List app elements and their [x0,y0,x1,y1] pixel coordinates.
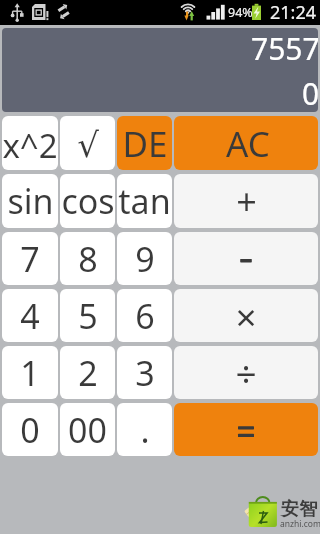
button[interactable]: 4 [2,289,58,342]
staticText: x^2 [2,123,58,168]
button[interactable]: 00 [60,403,115,456]
button[interactable]: Subtract [174,232,318,285]
button[interactable]: DE [117,116,172,170]
button[interactable]: Divide [174,346,318,399]
button[interactable]: 0 [2,403,58,456]
staticText: 安智 [281,498,317,521]
staticText: 0 [20,407,40,453]
button[interactable]: AC [174,116,318,170]
button[interactable]: . [117,403,172,456]
button[interactable]: tan [117,174,172,228]
staticText: 00 [68,407,107,453]
button[interactable]: 6 [117,289,172,342]
staticText: . [140,407,150,453]
button[interactable]: 2 [60,346,115,399]
staticText: cos [61,178,115,224]
button[interactable]: 5 [60,289,115,342]
staticText: DE [122,120,168,168]
staticText: 21:24 [270,0,317,25]
staticText: AC [226,120,270,168]
button[interactable]: 7 [2,232,58,285]
staticText: 9 [135,236,155,282]
button[interactable]: 1 [2,346,58,399]
staticText: anzhi.com [280,518,320,530]
staticText: 7557 [251,28,318,69]
staticText: sin [7,178,54,224]
button[interactable]: x^2 [2,116,58,170]
button[interactable]: 9 [117,232,172,285]
button[interactable]: Add [174,174,318,228]
staticText: 94% [228,4,253,21]
button[interactable]: cos [60,174,115,228]
staticText: ÷ [235,347,257,397]
button[interactable]: √ [60,116,115,170]
button[interactable]: Multiply [174,289,318,342]
staticText: 8 [78,236,98,282]
staticText: 7 [20,236,40,282]
staticText: 2 [78,350,98,396]
staticText: × [235,291,257,341]
button[interactable]: Equals [174,403,318,456]
button[interactable]: 8 [60,232,115,285]
staticText: 0 [302,73,318,112]
staticText: 3 [135,350,155,396]
staticText: + [236,177,257,226]
button[interactable]: 3 [117,346,172,399]
staticText: 4 [20,293,40,339]
staticText: 1 [20,350,40,396]
staticText: 6 [135,293,155,339]
staticText: tan [118,178,171,224]
button[interactable]: sin [2,174,58,228]
staticText: √ [77,125,99,165]
staticText: 5 [78,293,98,339]
